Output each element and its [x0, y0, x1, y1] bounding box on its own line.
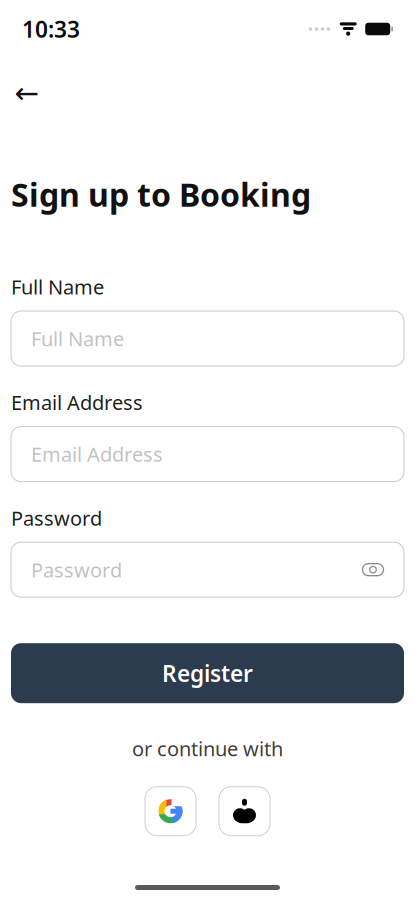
staticText: 10:33 — [22, 14, 80, 44]
button[interactable]: Continue with Apple — [219, 787, 270, 836]
staticText: Full Name — [31, 325, 124, 352]
button[interactable]: Continue with Google — [145, 787, 196, 836]
staticText: Password — [31, 556, 122, 583]
staticText: Email Address — [31, 441, 163, 467]
staticText: Email Address — [11, 389, 143, 416]
staticText: ← — [14, 76, 39, 110]
button[interactable]: Password — [11, 542, 404, 597]
button[interactable]: Email Address — [11, 427, 404, 482]
button[interactable]: Back — [7, 76, 47, 110]
button[interactable]: Register — [11, 643, 404, 703]
staticText: Register — [162, 658, 253, 688]
staticText: Password — [11, 505, 102, 531]
button[interactable]: Full Name — [11, 311, 404, 366]
staticText: Sign up to Booking — [11, 173, 311, 215]
staticText: or continue with — [132, 735, 283, 762]
staticText: Full Name — [11, 273, 104, 300]
